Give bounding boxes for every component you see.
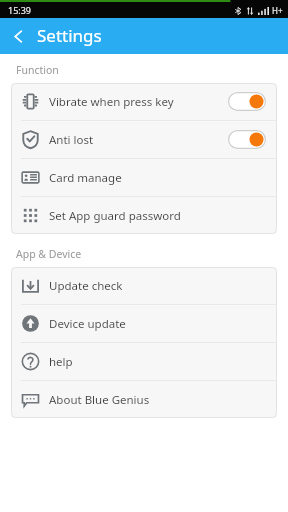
- staticText: H+: [272, 5, 283, 16]
- staticText: help: [49, 354, 266, 370]
- button[interactable]: Vibrate when press key: [11, 83, 277, 120]
- staticText: Card manage: [49, 170, 266, 186]
- button[interactable]: Toggle Vibrate when press key: [228, 92, 266, 111]
- staticText: Settings: [37, 24, 102, 47]
- button[interactable]: Back: [0, 18, 36, 54]
- staticText: About Blue Genius: [49, 392, 266, 408]
- button[interactable]: Update check: [11, 267, 277, 304]
- button[interactable]: Card manage: [11, 159, 277, 196]
- button[interactable]: Set App guard password: [11, 197, 277, 234]
- button[interactable]: Toggle Anti lost: [228, 130, 266, 149]
- button[interactable]: help: [11, 343, 277, 380]
- button[interactable]: About Blue Genius: [11, 381, 277, 418]
- staticText: 15:39: [8, 4, 32, 16]
- staticText: App & Device: [16, 247, 82, 261]
- staticText: Set App guard password: [49, 208, 266, 224]
- staticText: Function: [16, 63, 59, 77]
- button[interactable]: Device update: [11, 305, 277, 342]
- staticText: Update check: [49, 278, 266, 294]
- staticText: Device update: [49, 316, 266, 332]
- button[interactable]: Anti lost: [11, 121, 277, 158]
- staticText: Vibrate when press key: [49, 94, 228, 110]
- staticText: Anti lost: [49, 132, 228, 148]
